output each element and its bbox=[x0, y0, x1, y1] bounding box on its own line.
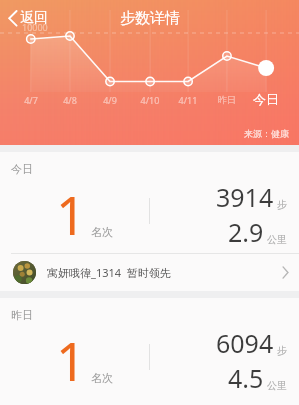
staticText: 4/7 bbox=[14, 94, 48, 106]
staticText: 4.5 bbox=[228, 361, 264, 395]
button[interactable]: 返回 bbox=[6, 7, 54, 29]
staticText: 今日 bbox=[249, 91, 283, 107]
staticText: 4/11 bbox=[171, 94, 205, 106]
staticText: 公里 bbox=[267, 233, 287, 246]
staticText: 10000 bbox=[22, 21, 48, 33]
staticText: 来源：健康 bbox=[244, 128, 289, 139]
staticText: 3914 bbox=[216, 180, 274, 214]
button[interactable]: 寓妍哦徫_1314 暂时领先 bbox=[0, 254, 299, 291]
staticText: 步数详情 bbox=[120, 9, 180, 28]
staticText: 今日 bbox=[11, 162, 33, 176]
staticText: 名次 bbox=[91, 225, 113, 239]
staticText: 1 bbox=[56, 179, 86, 250]
staticText: 公里 bbox=[267, 379, 287, 392]
staticText: 步 bbox=[277, 198, 287, 211]
staticText: 昨日 bbox=[11, 308, 33, 322]
staticText: 寓妍哦徫_1314 暂时领先 bbox=[47, 265, 171, 280]
staticText: 6094 bbox=[216, 326, 274, 360]
staticText: 名次 bbox=[91, 371, 113, 385]
staticText: 步 bbox=[277, 344, 287, 357]
staticText: 4/10 bbox=[133, 94, 167, 106]
staticText: 1 bbox=[56, 325, 86, 396]
staticText: 4/9 bbox=[93, 94, 127, 106]
staticText: 2.9 bbox=[228, 215, 264, 249]
staticText: 返回 bbox=[20, 9, 48, 27]
staticText: 昨日 bbox=[210, 94, 244, 105]
staticText: 4/8 bbox=[53, 94, 87, 106]
